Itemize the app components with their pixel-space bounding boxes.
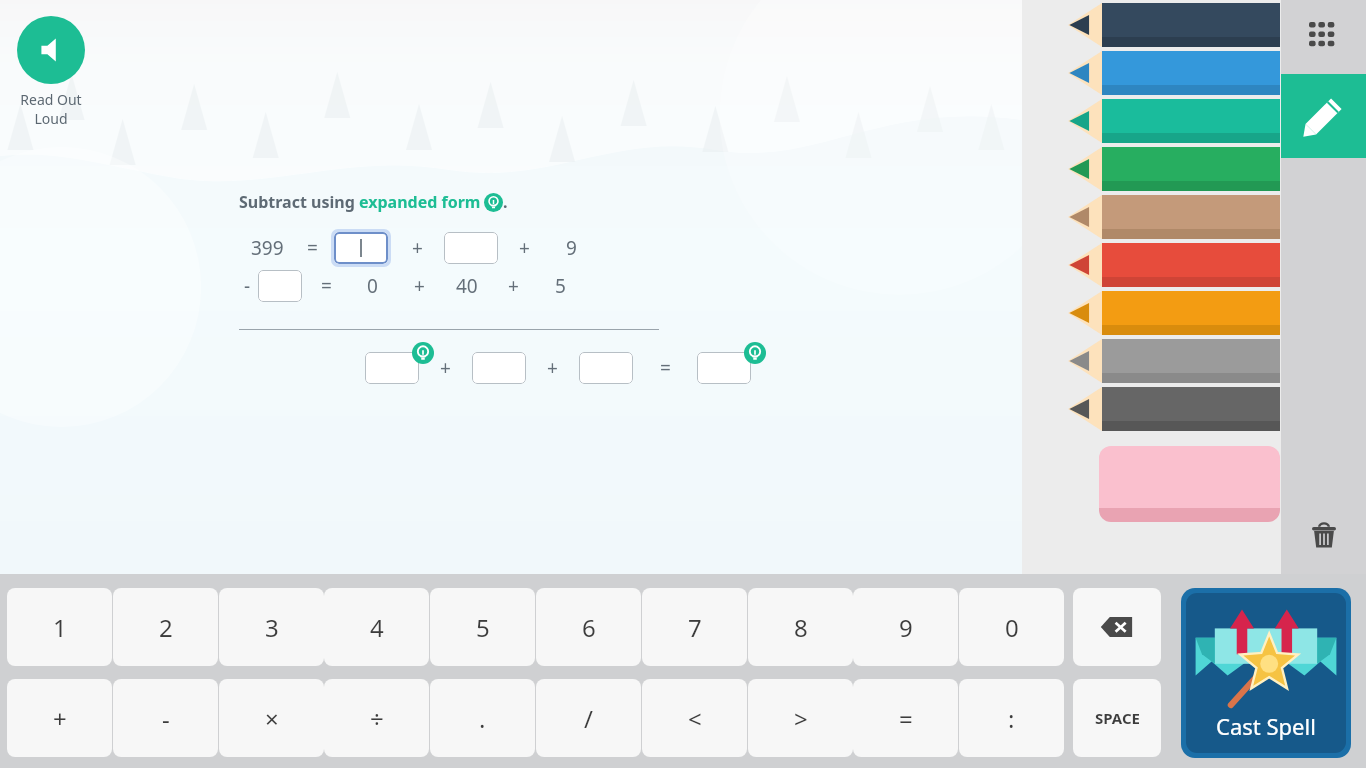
staticText: . <box>479 702 486 735</box>
button[interactable] <box>258 270 302 302</box>
button[interactable] <box>472 352 526 384</box>
staticText: Cast Spell <box>1216 711 1316 741</box>
staticText: 2 <box>159 611 173 644</box>
staticText: 3 <box>265 611 279 644</box>
staticText: 5 <box>555 273 566 299</box>
staticText: Read Out Loud <box>9 90 93 128</box>
button[interactable]: 0 <box>959 588 1064 666</box>
staticText: 4 <box>370 611 384 644</box>
staticText: ÷ <box>370 702 384 735</box>
staticText: = <box>660 355 671 381</box>
button[interactable]: Backspace <box>1073 588 1161 666</box>
staticText: + <box>53 702 67 735</box>
button[interactable]: Delete <box>1281 496 1366 576</box>
staticText: + <box>440 355 451 381</box>
staticText: + <box>508 273 519 299</box>
staticText: 0 <box>1005 611 1019 644</box>
button[interactable]: SPACE <box>1073 679 1161 757</box>
button[interactable] <box>365 352 419 384</box>
button[interactable]: Hint <box>412 342 434 364</box>
staticText: 5 <box>476 611 490 644</box>
button[interactable]: 6 <box>536 588 641 666</box>
staticText: > <box>794 702 808 735</box>
button[interactable]: Colour 3 <box>1068 98 1280 144</box>
staticText: 40 <box>456 273 478 299</box>
staticText: = <box>899 702 913 735</box>
staticText: × <box>265 702 279 735</box>
staticText: - <box>162 702 170 735</box>
button[interactable]: Cast Spell <box>1186 593 1346 753</box>
button[interactable]: Colour 9 <box>1068 386 1280 432</box>
staticText: = <box>321 273 332 299</box>
button[interactable]: > <box>748 679 853 757</box>
button[interactable]: Colour 7 <box>1068 290 1280 336</box>
button[interactable]: × <box>219 679 324 757</box>
button[interactable]: + <box>7 679 112 757</box>
button[interactable]: 2 <box>113 588 218 666</box>
staticText: 7 <box>688 611 702 644</box>
button[interactable]: Colour 4 <box>1068 146 1280 192</box>
staticText: 8 <box>794 611 808 644</box>
button[interactable]: Colour 1 <box>1068 2 1280 48</box>
staticText: - <box>244 273 251 299</box>
staticText: 9 <box>899 611 913 644</box>
button[interactable]: 7 <box>642 588 747 666</box>
button[interactable] <box>579 352 633 384</box>
staticText: + <box>414 273 425 299</box>
button[interactable]: ÷ <box>324 679 429 757</box>
button[interactable]: Colour 6 <box>1068 242 1280 288</box>
button[interactable]: Colour 2 <box>1068 50 1280 96</box>
staticText: : <box>1008 702 1015 735</box>
button[interactable]: = <box>853 679 958 757</box>
button[interactable]: Shapes <box>1281 0 1366 74</box>
staticText: + <box>412 235 423 261</box>
button[interactable] <box>334 232 388 264</box>
staticText: + <box>519 235 530 261</box>
button[interactable] <box>697 352 751 384</box>
staticText: 399 <box>251 235 284 261</box>
button[interactable]: : <box>959 679 1064 757</box>
staticText: . <box>503 191 508 213</box>
staticText: 9 <box>566 235 577 261</box>
staticText: 6 <box>582 611 596 644</box>
button[interactable]: . <box>430 679 535 757</box>
button[interactable]: 1 <box>7 588 112 666</box>
button[interactable]: Colour 5 <box>1068 194 1280 240</box>
staticText: / <box>584 702 593 735</box>
staticText: + <box>547 355 558 381</box>
button[interactable]: Colour 8 <box>1068 338 1280 384</box>
button[interactable] <box>444 232 498 264</box>
staticText: SPACE <box>1095 708 1140 728</box>
button[interactable]: Read Out Loud <box>9 16 93 128</box>
button[interactable]: Eraser <box>1099 446 1280 522</box>
button[interactable]: - <box>113 679 218 757</box>
button[interactable]: 5 <box>430 588 535 666</box>
button[interactable]: 3 <box>219 588 324 666</box>
button[interactable]: / <box>536 679 641 757</box>
staticText: Subtract using <box>239 191 359 213</box>
button[interactable]: 4 <box>324 588 429 666</box>
button[interactable]: 9 <box>853 588 958 666</box>
staticText: < <box>688 702 702 735</box>
button[interactable]: < <box>642 679 747 757</box>
button[interactable]: 8 <box>748 588 853 666</box>
staticText: expanded form <box>359 191 481 213</box>
button[interactable]: Hint <box>744 342 766 364</box>
staticText: = <box>307 235 318 261</box>
button[interactable]: Draw <box>1281 74 1366 158</box>
staticText: 1 <box>53 611 67 644</box>
staticText: 0 <box>367 273 378 299</box>
